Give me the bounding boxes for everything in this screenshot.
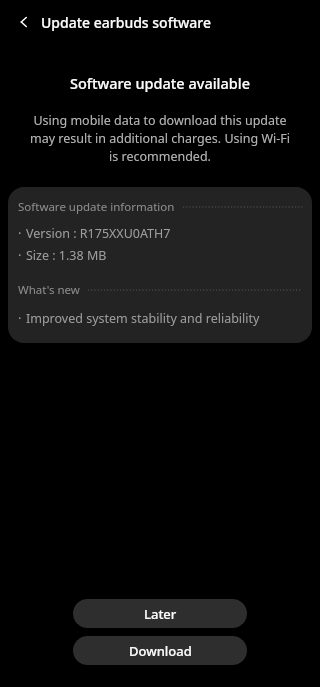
staticText: Size : 1.38 MB (26, 247, 107, 264)
staticText: Download (129, 642, 192, 660)
staticText: · (18, 309, 22, 327)
staticText: Later (144, 605, 177, 623)
button[interactable]: Back (10, 8, 38, 36)
staticText: Version : R175XXU0ATH7 (26, 225, 171, 242)
staticText: · (18, 224, 22, 242)
staticText: Update earbuds software (41, 13, 211, 32)
staticText: Improved system stability and reliabilit… (26, 310, 260, 327)
staticText: Software update available (0, 73, 320, 93)
staticText: What's new (18, 282, 80, 298)
staticText: · (18, 246, 22, 264)
staticText: Using mobile data to download this updat… (26, 112, 294, 165)
button[interactable]: Download (73, 636, 247, 665)
staticText: Software update information (18, 199, 175, 215)
button[interactable]: Later (73, 599, 247, 628)
